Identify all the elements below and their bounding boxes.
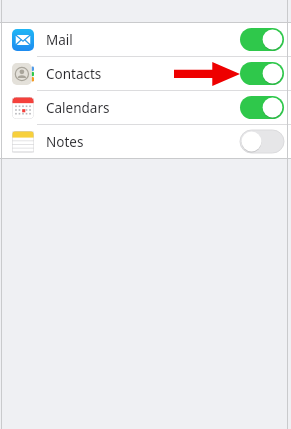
staticText: Calendars — [46, 99, 110, 117]
button[interactable]: On — [240, 96, 284, 119]
button[interactable]: Mail — [0, 23, 291, 56]
button[interactable]: Notes — [0, 125, 291, 158]
button[interactable]: Off — [240, 130, 284, 153]
other: Annotation arrow — [174, 62, 240, 88]
button[interactable]: Calendars — [0, 91, 291, 124]
staticText: Mail — [46, 31, 73, 49]
button[interactable]: On — [240, 62, 284, 85]
button[interactable]: Contacts — [0, 57, 291, 90]
button[interactable]: On — [240, 28, 284, 51]
staticText: Notes — [46, 133, 84, 151]
staticText: Contacts — [46, 65, 102, 83]
